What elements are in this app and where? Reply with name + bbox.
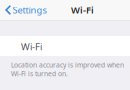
staticText: Settings <box>12 4 46 16</box>
staticText: Location accuracy is improved when Wi-Fi… <box>11 60 124 78</box>
button[interactable]: Wi-Fi <box>0 36 130 56</box>
staticText: Wi-Fi <box>21 41 42 53</box>
staticText: Wi-Fi <box>71 4 94 16</box>
button[interactable]: Settings <box>0 0 51 20</box>
